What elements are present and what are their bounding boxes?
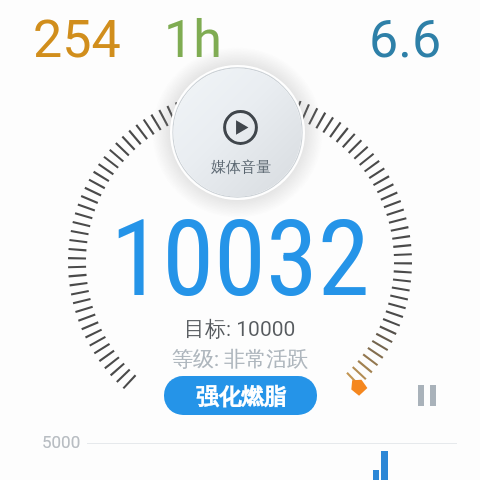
button[interactable]: Pause — [418, 385, 436, 406]
staticText: 254 — [33, 9, 121, 70]
button[interactable]: Media volume — [170, 66, 304, 200]
staticText: 1h — [164, 9, 222, 70]
staticText: 等级: 非常活跃 — [172, 346, 309, 372]
staticText: 6.6 — [369, 9, 442, 70]
button[interactable]: 强化燃脂 — [164, 376, 317, 415]
staticText: 10032 — [0, 198, 480, 321]
staticText: 5000 — [42, 432, 81, 452]
staticText: 强化燃脂 — [196, 382, 286, 410]
staticText: 媒体音量 — [211, 158, 271, 177]
staticText: 目标: 10000 — [184, 316, 296, 342]
